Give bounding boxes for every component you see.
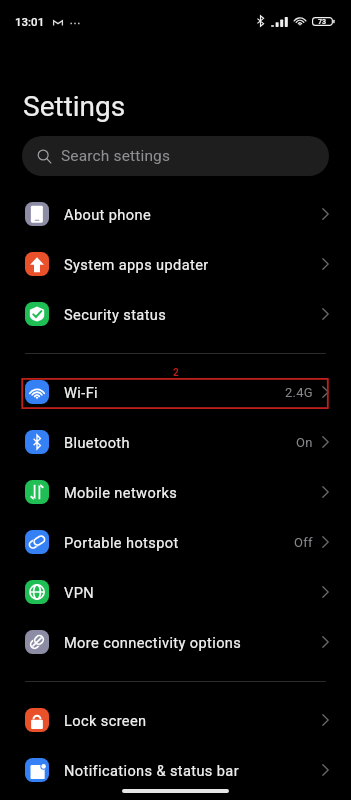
staticText: About phone: [64, 206, 152, 223]
staticText: 13:01: [15, 15, 45, 28]
staticText: Search settings: [61, 147, 171, 165]
button[interactable]: Portable hotspot: [0, 517, 351, 567]
staticText: System apps updater: [64, 256, 209, 273]
button[interactable]: About phone: [0, 189, 351, 239]
staticText: On: [296, 435, 313, 450]
staticText: 73: [318, 18, 327, 26]
button[interactable]: More connectivity options: [0, 617, 351, 667]
button[interactable]: Mobile networks: [0, 467, 351, 517]
staticText: Bluetooth: [64, 434, 130, 451]
staticText: More connectivity options: [64, 634, 242, 651]
staticText: Off: [294, 535, 313, 550]
staticText: Portable hotspot: [64, 534, 179, 551]
button[interactable]: System apps updater: [0, 239, 351, 289]
staticText: Wi-Fi: [64, 384, 99, 401]
staticText: 2: [173, 367, 179, 379]
staticText: VPN: [64, 584, 95, 601]
button[interactable]: Lock screen: [0, 695, 351, 745]
button[interactable]: Bluetooth: [0, 417, 351, 467]
button[interactable]: VPN: [0, 567, 351, 617]
staticText: Mobile networks: [64, 484, 178, 501]
button[interactable]: Security status: [0, 289, 351, 339]
staticText: Lock screen: [64, 712, 147, 729]
button[interactable]: Search settings: [22, 136, 329, 176]
staticText: Security status: [64, 306, 167, 323]
staticText: Notifications & status bar: [64, 762, 239, 779]
staticText: Settings: [23, 90, 126, 123]
button[interactable]: Notifications & status bar: [0, 745, 351, 795]
staticText: 2.4G: [285, 385, 313, 400]
button[interactable]: Wi-Fi: [0, 367, 351, 417]
